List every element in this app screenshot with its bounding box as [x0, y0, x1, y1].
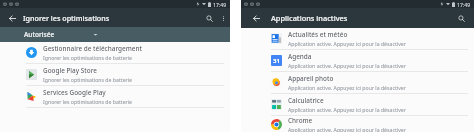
button[interactable]: Calculatrice: [241, 94, 474, 116]
staticText: Application active. Appuyez ici pour la …: [288, 84, 406, 91]
staticText: Services Google Play: [43, 88, 106, 97]
staticText: Gestionnaire de téléchargement: [43, 44, 142, 53]
staticText: Application active. Appuyez ici pour la …: [288, 106, 406, 113]
staticText: Application active. Appuyez ici pour la …: [288, 126, 406, 132]
button[interactable]: 31: [241, 50, 474, 72]
staticText: 17:49: [457, 1, 471, 8]
staticText: Chrome: [288, 116, 313, 125]
staticText: Ignorer les optimisations de batterie: [43, 98, 133, 105]
button[interactable]: Autorisée: [0, 27, 230, 42]
staticText: Ignorer les optimisations: [23, 13, 110, 23]
button[interactable]: Search: [202, 11, 216, 25]
staticText: Applications inactives: [271, 13, 348, 23]
staticText: Actualités et météo: [288, 30, 348, 39]
button[interactable]: Services Google Play: [0, 86, 230, 108]
staticText: Ignorer les optimisations de batterie: [43, 76, 133, 83]
button[interactable]: Back: [249, 11, 263, 25]
button[interactable]: More options: [216, 11, 230, 25]
staticText: Application active. Appuyez ici pour la …: [288, 62, 406, 69]
button[interactable]: Chrome: [241, 116, 474, 132]
staticText: Application active. Appuyez ici pour la …: [288, 40, 406, 47]
staticText: Google Play Store: [43, 66, 97, 75]
staticText: Ignorer les optimisations de batterie: [43, 54, 133, 61]
staticText: 31: [273, 57, 280, 65]
staticText: Appareil photo: [288, 74, 334, 83]
button[interactable]: Back: [5, 11, 19, 25]
button[interactable]: Appareil photo: [241, 72, 474, 94]
button[interactable]: Google Play Store: [0, 64, 230, 86]
staticText: 17:49: [213, 1, 227, 8]
button[interactable]: Actualités et météo: [241, 28, 474, 50]
staticText: Autorisée: [24, 30, 55, 39]
staticText: Calculatrice: [288, 96, 324, 105]
button[interactable]: Search: [454, 11, 468, 25]
staticText: Agenda: [288, 52, 312, 61]
button[interactable]: Gestionnaire de téléchargement: [0, 42, 230, 64]
